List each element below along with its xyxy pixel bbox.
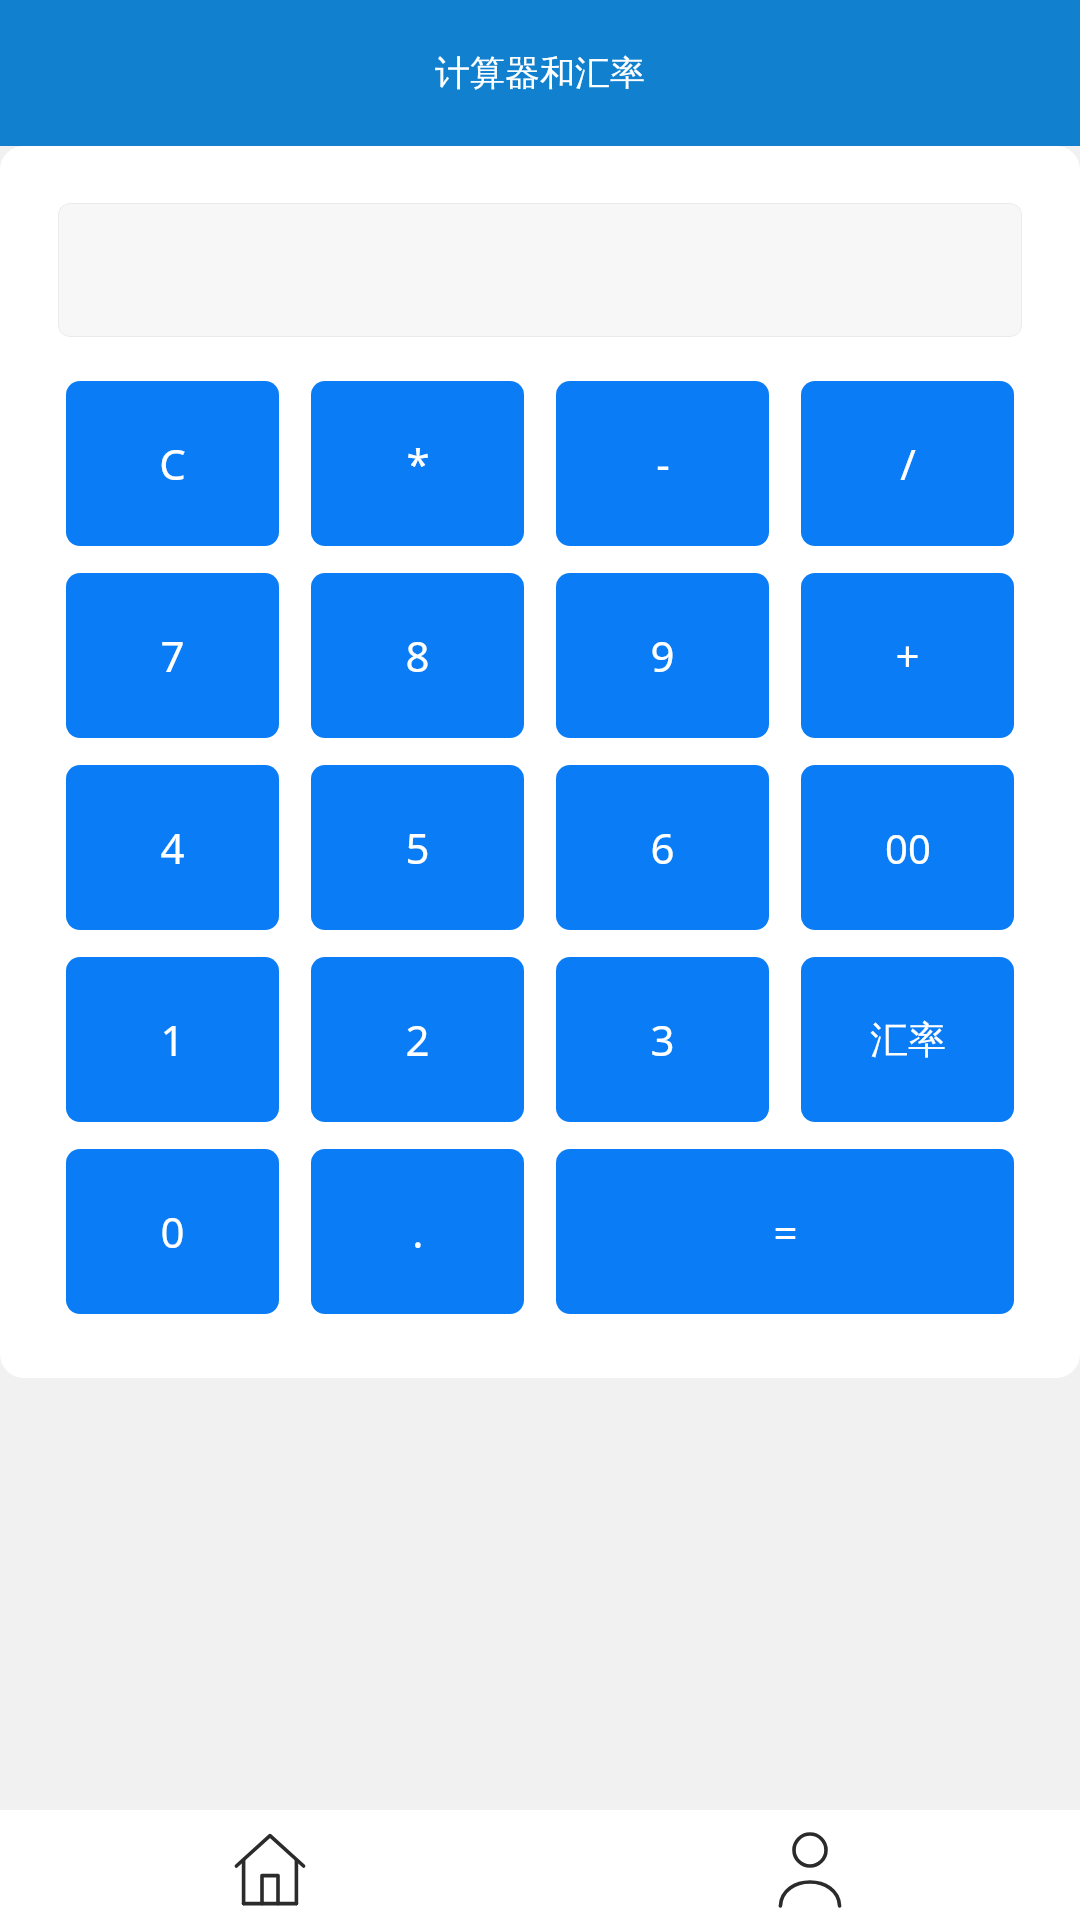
staticText: C [159, 435, 186, 492]
button[interactable]: 8 [311, 573, 524, 738]
staticText: = [773, 1203, 798, 1260]
staticText: 1 [160, 1011, 185, 1068]
button[interactable]: Profile [540, 1810, 1080, 1921]
staticText: 汇率 [870, 1016, 946, 1064]
staticText: 6 [650, 819, 675, 876]
staticText: 4 [160, 819, 185, 876]
staticText: 7 [160, 627, 185, 684]
button[interactable]: 汇率 [801, 957, 1014, 1122]
button[interactable]: . [311, 1149, 524, 1314]
button[interactable]: * [311, 381, 524, 546]
button[interactable]: = [556, 1149, 1014, 1314]
button[interactable]: 3 [556, 957, 769, 1122]
button[interactable]: 1 [66, 957, 279, 1122]
button[interactable]: - [556, 381, 769, 546]
button[interactable]: 6 [556, 765, 769, 930]
button[interactable]: / [801, 381, 1014, 546]
button[interactable]: 7 [66, 573, 279, 738]
button[interactable]: 4 [66, 765, 279, 930]
staticText: 3 [650, 1011, 675, 1068]
staticText: - [656, 435, 670, 492]
staticText: 9 [650, 627, 675, 684]
button[interactable]: + [801, 573, 1014, 738]
staticText: 00 [885, 821, 931, 875]
staticText: . [412, 1203, 424, 1260]
button[interactable]: Home [0, 1810, 540, 1921]
staticText: 2 [405, 1011, 430, 1068]
staticText: 5 [405, 819, 430, 876]
staticText: / [900, 435, 916, 492]
staticText: 0 [160, 1203, 185, 1260]
staticText: * [406, 435, 430, 492]
staticText: 计算器和汇率 [435, 51, 645, 95]
staticText: 8 [405, 627, 430, 684]
button[interactable]: 2 [311, 957, 524, 1122]
button[interactable]: C [66, 381, 279, 546]
button[interactable]: 0 [66, 1149, 279, 1314]
staticText: + [895, 627, 920, 684]
button[interactable]: 5 [311, 765, 524, 930]
button[interactable]: 00 [801, 765, 1014, 930]
button[interactable]: 9 [556, 573, 769, 738]
